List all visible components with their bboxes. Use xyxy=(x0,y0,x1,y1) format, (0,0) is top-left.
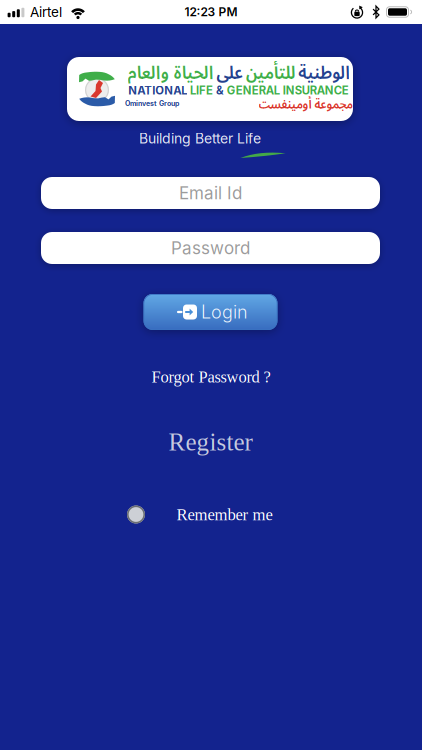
staticText: NATIONAL xyxy=(128,84,187,97)
staticText: & xyxy=(216,84,224,97)
button[interactable]: Login xyxy=(143,294,277,330)
staticText: Remember me xyxy=(176,505,272,524)
staticText: الحياة والعام xyxy=(127,59,213,84)
staticText: Password xyxy=(171,238,250,258)
button[interactable]: Email Id xyxy=(41,177,380,209)
staticText: LIFE xyxy=(190,84,213,97)
staticText: Email Id xyxy=(179,183,242,203)
staticText: للتأمين xyxy=(245,59,295,84)
staticText: Ominvest Group xyxy=(125,99,179,108)
staticText: Building Better Life xyxy=(139,130,261,147)
button[interactable]: Register xyxy=(168,428,252,456)
staticText: على xyxy=(216,59,243,84)
staticText: الوطنية xyxy=(298,59,350,84)
staticText: Forgot Password ? xyxy=(151,368,270,386)
button[interactable]: Remember me xyxy=(127,505,272,524)
staticText: Airtel xyxy=(30,4,62,20)
staticText: Register xyxy=(168,428,252,456)
staticText: Login xyxy=(201,301,248,323)
staticText: GENERAL INSURANCE xyxy=(227,84,349,97)
button[interactable]: Forgot Password ? xyxy=(151,368,270,386)
staticText: مجموعة أومينفست xyxy=(258,95,352,112)
staticText: 12:23 PM xyxy=(184,5,237,19)
button[interactable]: Password xyxy=(41,232,380,264)
